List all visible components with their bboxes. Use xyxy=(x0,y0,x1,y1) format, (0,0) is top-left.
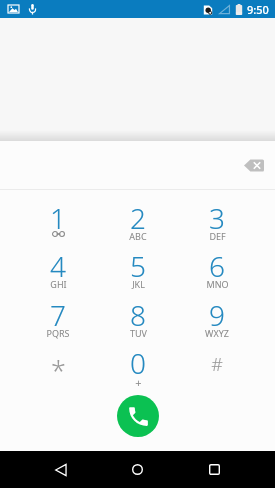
staticText: 9:50 xyxy=(247,2,269,17)
staticText: JKL xyxy=(132,278,145,290)
staticText: # xyxy=(211,352,223,377)
staticText: 7 xyxy=(50,296,66,334)
staticText: 1 xyxy=(50,199,66,237)
staticText: 8 xyxy=(130,296,146,334)
button[interactable]: # xyxy=(181,343,253,391)
staticText: ABC xyxy=(129,230,147,242)
button[interactable]: 4 xyxy=(22,246,94,294)
staticText: + xyxy=(135,375,142,390)
staticText: * xyxy=(51,352,66,389)
button[interactable]: * xyxy=(22,343,94,391)
button[interactable]: 7 xyxy=(22,295,94,343)
button[interactable]: 9 xyxy=(181,295,253,343)
staticText: 9 xyxy=(209,296,225,334)
button[interactable]: Recents xyxy=(194,451,234,488)
staticText: 5 xyxy=(130,247,146,285)
button[interactable]: 6 xyxy=(181,246,253,294)
staticText: TUV xyxy=(130,327,147,339)
button[interactable]: 1 xyxy=(22,198,94,246)
button[interactable]: Backspace xyxy=(238,149,270,181)
staticText: MNO xyxy=(206,278,229,290)
staticText: 4 xyxy=(50,247,66,285)
button[interactable]: 8 xyxy=(102,295,174,343)
button[interactable]: 2 xyxy=(102,198,174,246)
staticText: PQRS xyxy=(46,327,70,339)
button[interactable]: 3 xyxy=(181,198,253,246)
staticText: 2 xyxy=(130,199,146,237)
staticText: WXYZ xyxy=(205,327,229,339)
button[interactable]: 5 xyxy=(102,246,174,294)
button[interactable]: 0 xyxy=(102,343,174,391)
button[interactable]: Home xyxy=(117,451,157,488)
button[interactable]: Back xyxy=(41,451,81,488)
staticText: 3 xyxy=(209,199,225,237)
button[interactable]: Call xyxy=(117,395,159,437)
staticText: DEF xyxy=(209,230,226,242)
staticText: 6 xyxy=(209,247,225,285)
staticText: 0 xyxy=(130,344,146,382)
staticText: GHI xyxy=(50,278,67,290)
